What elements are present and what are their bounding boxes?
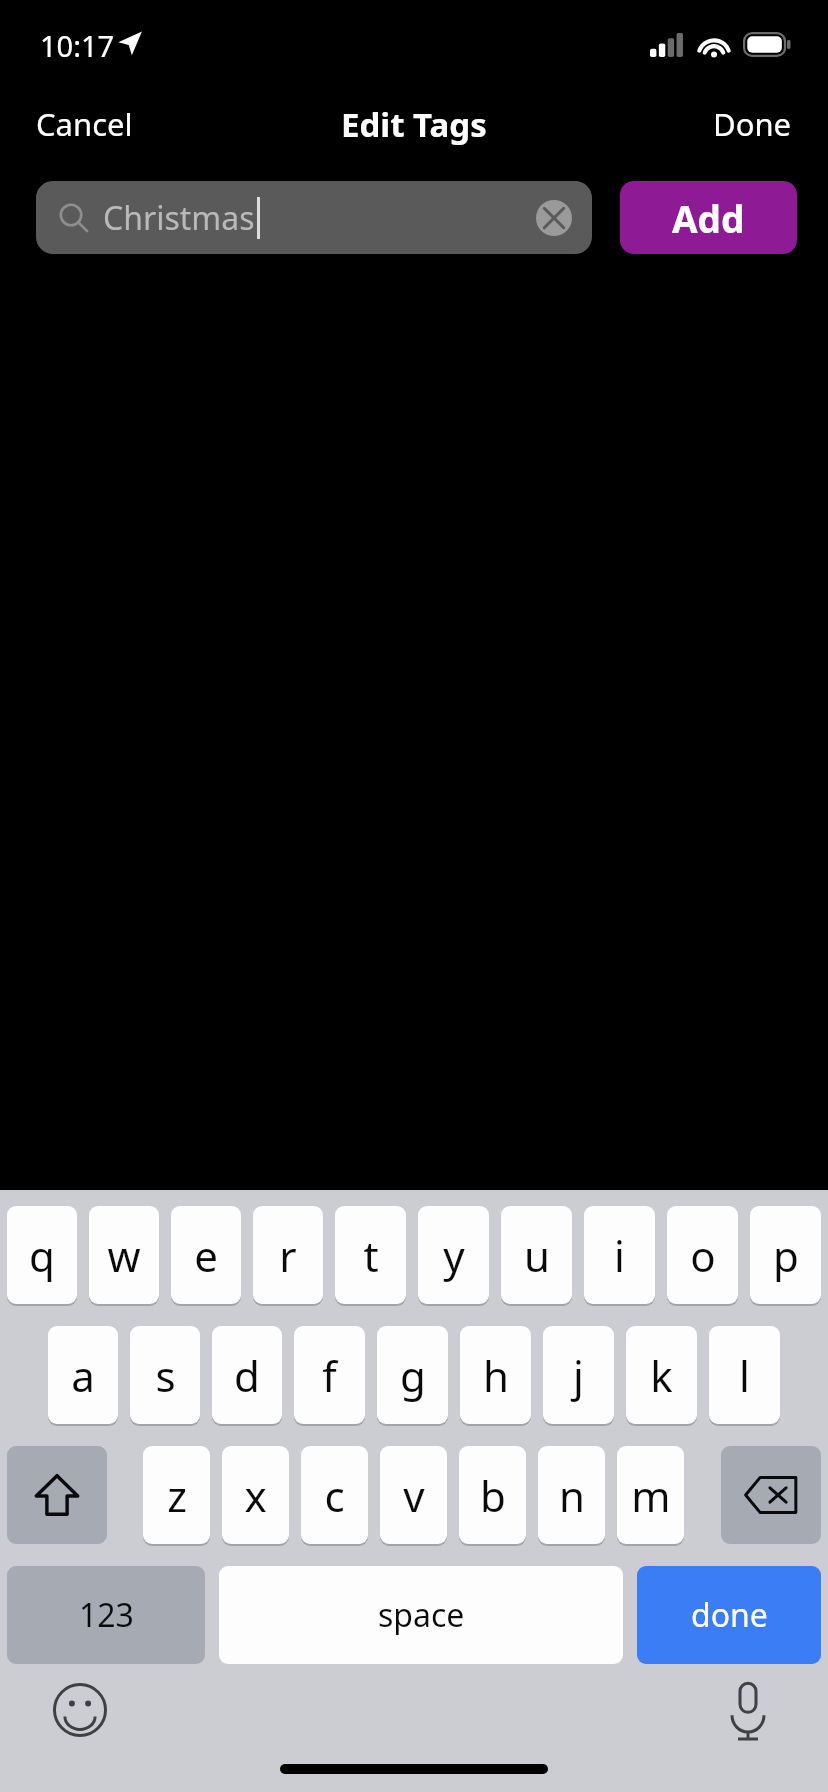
staticText: e — [194, 1227, 218, 1284]
staticText: 10:17 — [40, 26, 115, 65]
button[interactable]: d — [212, 1326, 282, 1424]
button[interactable]: a — [48, 1326, 118, 1424]
staticText: p — [773, 1227, 799, 1284]
button[interactable]: b — [459, 1446, 526, 1544]
button[interactable]: t — [335, 1206, 406, 1304]
staticText: 123 — [79, 1593, 134, 1637]
staticText: r — [279, 1227, 297, 1284]
button[interactable]: Shift — [7, 1446, 107, 1544]
staticText: u — [524, 1227, 550, 1284]
staticText: b — [480, 1467, 506, 1524]
staticText: d — [234, 1347, 260, 1404]
staticText: o — [690, 1227, 716, 1284]
button[interactable]: x — [222, 1446, 289, 1544]
staticText: q — [29, 1227, 55, 1284]
staticText: k — [650, 1347, 673, 1404]
staticText: x — [244, 1467, 267, 1524]
button[interactable]: h — [460, 1326, 531, 1424]
staticText: j — [573, 1347, 584, 1404]
staticText: w — [107, 1227, 141, 1284]
button[interactable]: Add — [620, 181, 797, 254]
button[interactable]: i — [584, 1206, 655, 1304]
button[interactable]: y — [418, 1206, 489, 1304]
button[interactable]: q — [7, 1206, 77, 1304]
button[interactable]: g — [377, 1326, 448, 1424]
button[interactable]: v — [380, 1446, 447, 1544]
button[interactable]: j — [543, 1326, 614, 1424]
button[interactable]: n — [538, 1446, 605, 1544]
staticText: z — [167, 1467, 187, 1524]
button[interactable]: p — [750, 1206, 821, 1304]
staticText: Done — [713, 103, 792, 145]
staticText: c — [324, 1467, 345, 1524]
staticText: Christmas — [103, 196, 255, 240]
button[interactable]: k — [626, 1326, 697, 1424]
staticText: l — [739, 1347, 750, 1404]
staticText: a — [71, 1347, 95, 1404]
button[interactable]: l — [709, 1326, 780, 1424]
staticText: space — [378, 1593, 465, 1637]
button[interactable]: done — [637, 1566, 821, 1664]
staticText: g — [400, 1347, 426, 1404]
button[interactable]: e — [171, 1206, 241, 1304]
button[interactable]: f — [294, 1326, 365, 1424]
button[interactable]: s — [130, 1326, 200, 1424]
button[interactable]: r — [253, 1206, 323, 1304]
button[interactable]: Cancel — [0, 93, 169, 155]
button[interactable]: space — [219, 1566, 623, 1664]
staticText: Add — [672, 193, 745, 243]
staticText: f — [322, 1347, 337, 1404]
button[interactable]: m — [617, 1446, 684, 1544]
button[interactable]: Dictation — [716, 1678, 780, 1742]
button[interactable]: z — [143, 1446, 210, 1544]
button[interactable]: Clear text — [532, 196, 576, 240]
staticText: v — [403, 1467, 425, 1524]
button[interactable]: 123 — [7, 1566, 205, 1664]
staticText: m — [631, 1467, 671, 1524]
button[interactable]: c — [301, 1446, 368, 1544]
button[interactable]: Christmas — [36, 181, 592, 254]
staticText: n — [559, 1467, 585, 1524]
staticText: t — [363, 1227, 379, 1284]
staticText: y — [443, 1227, 465, 1284]
staticText: h — [483, 1347, 509, 1404]
button[interactable]: Backspace — [721, 1446, 821, 1544]
staticText: i — [614, 1227, 625, 1284]
staticText: Edit Tags — [341, 102, 487, 147]
button[interactable]: o — [667, 1206, 738, 1304]
staticText: s — [155, 1347, 176, 1404]
button[interactable]: Emoji — [48, 1678, 112, 1742]
button[interactable]: u — [501, 1206, 572, 1304]
button[interactable]: w — [89, 1206, 159, 1304]
staticText: done — [691, 1593, 768, 1637]
button[interactable]: Done — [677, 93, 828, 155]
staticText: Cancel — [36, 103, 133, 145]
